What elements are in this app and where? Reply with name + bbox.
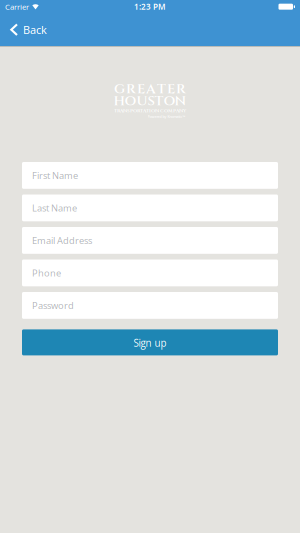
- button[interactable]: First Name: [22, 162, 278, 189]
- button[interactable]: Phone: [22, 259, 278, 286]
- staticText: Sign up: [133, 336, 166, 350]
- staticText: HOUSTON: [113, 92, 186, 110]
- staticText: Phone: [32, 266, 61, 279]
- staticText: Back: [23, 22, 47, 37]
- button[interactable]: Email Address: [22, 227, 278, 254]
- staticText: First Name: [32, 169, 78, 182]
- staticText: Email Address: [32, 234, 92, 247]
- staticText: TRANSPORTATION COMPANY: [114, 107, 186, 114]
- button[interactable]: Sign up: [22, 329, 278, 355]
- button[interactable]: Last Name: [22, 194, 278, 221]
- staticText: G R E A T E R: [114, 80, 186, 98]
- staticText: Last Name: [32, 201, 77, 214]
- button[interactable]: Password: [22, 292, 278, 319]
- staticText: Powered by Knomatic™: [147, 114, 185, 119]
- staticText: Carrier: [5, 1, 29, 12]
- staticText: Password: [32, 299, 74, 312]
- staticText: 1:23 PM: [134, 1, 166, 12]
- button[interactable]: Back: [0, 15, 57, 46]
